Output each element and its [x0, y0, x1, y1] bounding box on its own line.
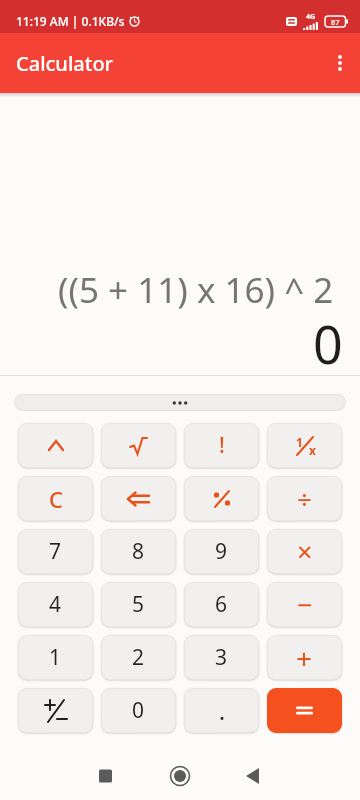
button[interactable] — [184, 476, 259, 521]
button[interactable] — [267, 688, 342, 733]
button[interactable]: − — [267, 582, 342, 627]
button[interactable]: 8 — [101, 529, 176, 574]
button[interactable]: 1 — [18, 635, 93, 680]
staticText: 87 — [331, 17, 340, 27]
button[interactable] — [101, 423, 176, 468]
staticText: 1 — [49, 643, 62, 672]
staticText: 5 — [132, 590, 145, 619]
button[interactable]: 0 — [101, 688, 176, 733]
button[interactable]: 4 — [18, 582, 93, 627]
button[interactable] — [240, 733, 360, 800]
button[interactable]: 7 — [18, 529, 93, 574]
staticText: + — [296, 639, 313, 677]
button[interactable]: . — [184, 688, 259, 733]
staticText: C — [49, 484, 63, 514]
button[interactable] — [18, 688, 93, 733]
staticText: 11:19 AM | 0.1KB/s — [16, 13, 125, 29]
staticText: 0 — [132, 696, 145, 725]
button[interactable] — [101, 476, 176, 521]
staticText: 3 — [215, 643, 228, 672]
staticText: 6 — [215, 590, 228, 619]
button[interactable]: ! — [184, 423, 259, 468]
button[interactable]: C — [18, 476, 93, 521]
staticText: 4 — [49, 590, 62, 619]
button[interactable]: 5 — [101, 582, 176, 627]
button[interactable]: 1 — [267, 423, 342, 468]
staticText: ((5 + 11) x 16) ^ 2 — [58, 266, 334, 314]
button[interactable] — [120, 733, 240, 800]
staticText: . — [219, 696, 225, 726]
staticText: 7 — [49, 537, 62, 566]
staticText: ÷ — [297, 481, 312, 516]
button[interactable] — [14, 394, 346, 411]
staticText: 9 — [215, 537, 228, 566]
button[interactable] — [18, 423, 93, 468]
staticText: 2 — [132, 643, 145, 672]
staticText: × — [297, 533, 313, 570]
staticText: x — [309, 442, 316, 458]
button[interactable]: 3 — [184, 635, 259, 680]
staticText: 4G — [306, 12, 316, 22]
button[interactable] — [0, 733, 120, 800]
button[interactable]: ÷ — [267, 476, 342, 521]
button[interactable]: + — [267, 635, 342, 680]
button[interactable]: 2 — [101, 635, 176, 680]
staticText: 8 — [132, 537, 145, 566]
staticText: 1 — [296, 434, 303, 450]
staticText: − — [297, 586, 313, 623]
staticText: ! — [219, 431, 225, 460]
staticText: 0 — [313, 308, 343, 375]
button[interactable]: 6 — [184, 582, 259, 627]
button[interactable] — [321, 44, 359, 82]
button[interactable]: × — [267, 529, 342, 574]
staticText: Calculator — [16, 50, 114, 77]
button[interactable]: 9 — [184, 529, 259, 574]
